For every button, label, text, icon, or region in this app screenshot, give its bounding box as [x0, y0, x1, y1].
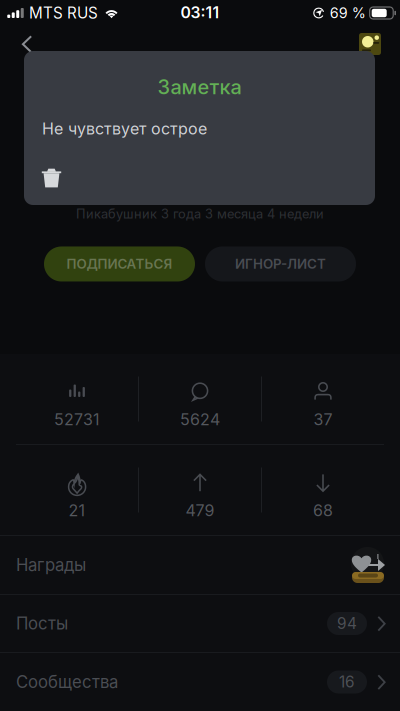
button[interactable]: Account: [350, 29, 390, 59]
button[interactable]: Сообщества: [0, 653, 400, 711]
staticText: 16: [339, 673, 355, 691]
staticText: 479: [185, 501, 214, 520]
button[interactable]: 52731: [16, 354, 138, 444]
button[interactable]: ПОДПИСАТЬСЯ: [44, 246, 195, 281]
staticText: Не чувствует острое: [42, 119, 207, 138]
button[interactable]: Посты: [0, 595, 400, 652]
staticText: 21: [68, 501, 85, 520]
button[interactable]: 21: [16, 445, 138, 535]
staticText: ПОДПИСАТЬСЯ: [66, 256, 172, 272]
staticText: 52731: [54, 410, 100, 429]
staticText: Посты: [16, 613, 68, 634]
staticText: Пикабушник 3 года 3 месяца 4 недели: [76, 206, 324, 221]
staticText: 03:11: [180, 3, 219, 22]
button[interactable]: 68: [262, 445, 384, 535]
staticText: 5624: [180, 410, 220, 429]
button[interactable]: 479: [139, 445, 261, 535]
button[interactable]: 5624: [139, 354, 261, 444]
button[interactable]: Delete note: [31, 157, 72, 198]
button[interactable]: 37: [262, 354, 384, 444]
button[interactable]: Back: [5, 29, 49, 59]
staticText: 37: [313, 410, 332, 429]
staticText: MTS RUS: [29, 4, 98, 22]
staticText: 69 %: [330, 4, 366, 22]
staticText: 68: [313, 501, 333, 520]
button[interactable]: Награды: [0, 536, 400, 594]
staticText: 94: [337, 614, 357, 633]
staticText: ИГНОР-ЛИСТ: [235, 256, 326, 272]
staticText: Заметка: [157, 75, 241, 99]
staticText: Сообщества: [16, 672, 118, 692]
staticText: Награды: [16, 555, 86, 575]
button[interactable]: ИГНОР-ЛИСТ: [205, 246, 356, 281]
